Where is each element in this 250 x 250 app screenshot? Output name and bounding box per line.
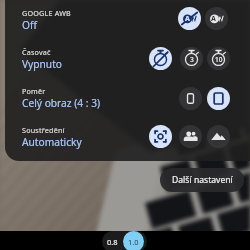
staticText: 10 [215,55,223,64]
button[interactable]: Poměr [22,86,101,125]
staticText: Soustředění [22,125,65,135]
staticText: Vypnuto [22,57,63,71]
button[interactable]: Auto white balance [205,7,228,30]
staticText: 0.8 [107,237,118,247]
button[interactable]: Další nastavení [160,168,244,192]
button[interactable]: Timer off [149,47,172,70]
staticText: GOOGLE AWB [22,8,71,18]
button[interactable]: GOOGLE AWB [22,8,71,47]
button[interactable]: Aspect ratio 4 by 3 [207,87,230,110]
button[interactable]: Soustředění [22,125,82,164]
staticText: Automaticky [22,135,82,149]
staticText: Celý obraz (4 : 3) [22,96,101,110]
button[interactable]: Časovač [22,47,63,86]
staticText: 3 [190,55,194,64]
button[interactable]: 0.8 [102,231,123,250]
staticText: A [185,14,190,24]
button[interactable]: Face focus [179,125,202,148]
button[interactable]: Landscape focus [207,125,230,148]
staticText: Další nastavení [172,174,233,186]
button[interactable]: Auto focus [149,125,172,148]
staticText: 1.0 [128,237,139,247]
staticText: A [211,14,216,24]
staticText: Poměr [22,86,46,96]
button[interactable]: 1.0 [123,231,144,250]
button[interactable]: Aspect ratio 16 by 9 [179,87,202,110]
staticText: Časovač [22,47,51,57]
button[interactable]: Timer 10 seconds [207,47,230,70]
button[interactable]: White balance off [178,7,201,30]
button[interactable]: Timer 3 seconds [180,47,203,70]
staticText: Off [22,18,37,32]
